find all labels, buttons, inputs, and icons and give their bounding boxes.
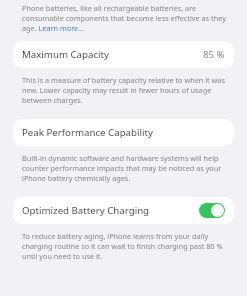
button[interactable]: Optimized Battery Charging — [13, 197, 234, 224]
staticText: Phone batteries, like all rechargeable b… — [22, 3, 229, 33]
staticText: This is a measure of battery capacity re… — [22, 75, 229, 105]
staticText: Optimized Battery Charging — [22, 204, 150, 217]
staticText: Built-in dynamic software and hardware s… — [22, 153, 229, 183]
staticText: Maximum Capacity — [22, 48, 110, 61]
staticText: To reduce battery aging, iPhone learns f… — [22, 231, 229, 261]
staticText: 85 % — [203, 48, 225, 61]
button[interactable]: Maximum Capacity — [13, 41, 234, 68]
button[interactable]: Peak Performance Capability — [13, 119, 234, 146]
staticText: Peak Performance Capability — [22, 126, 153, 139]
button[interactable]: Optimized Battery Charging — [199, 203, 225, 218]
